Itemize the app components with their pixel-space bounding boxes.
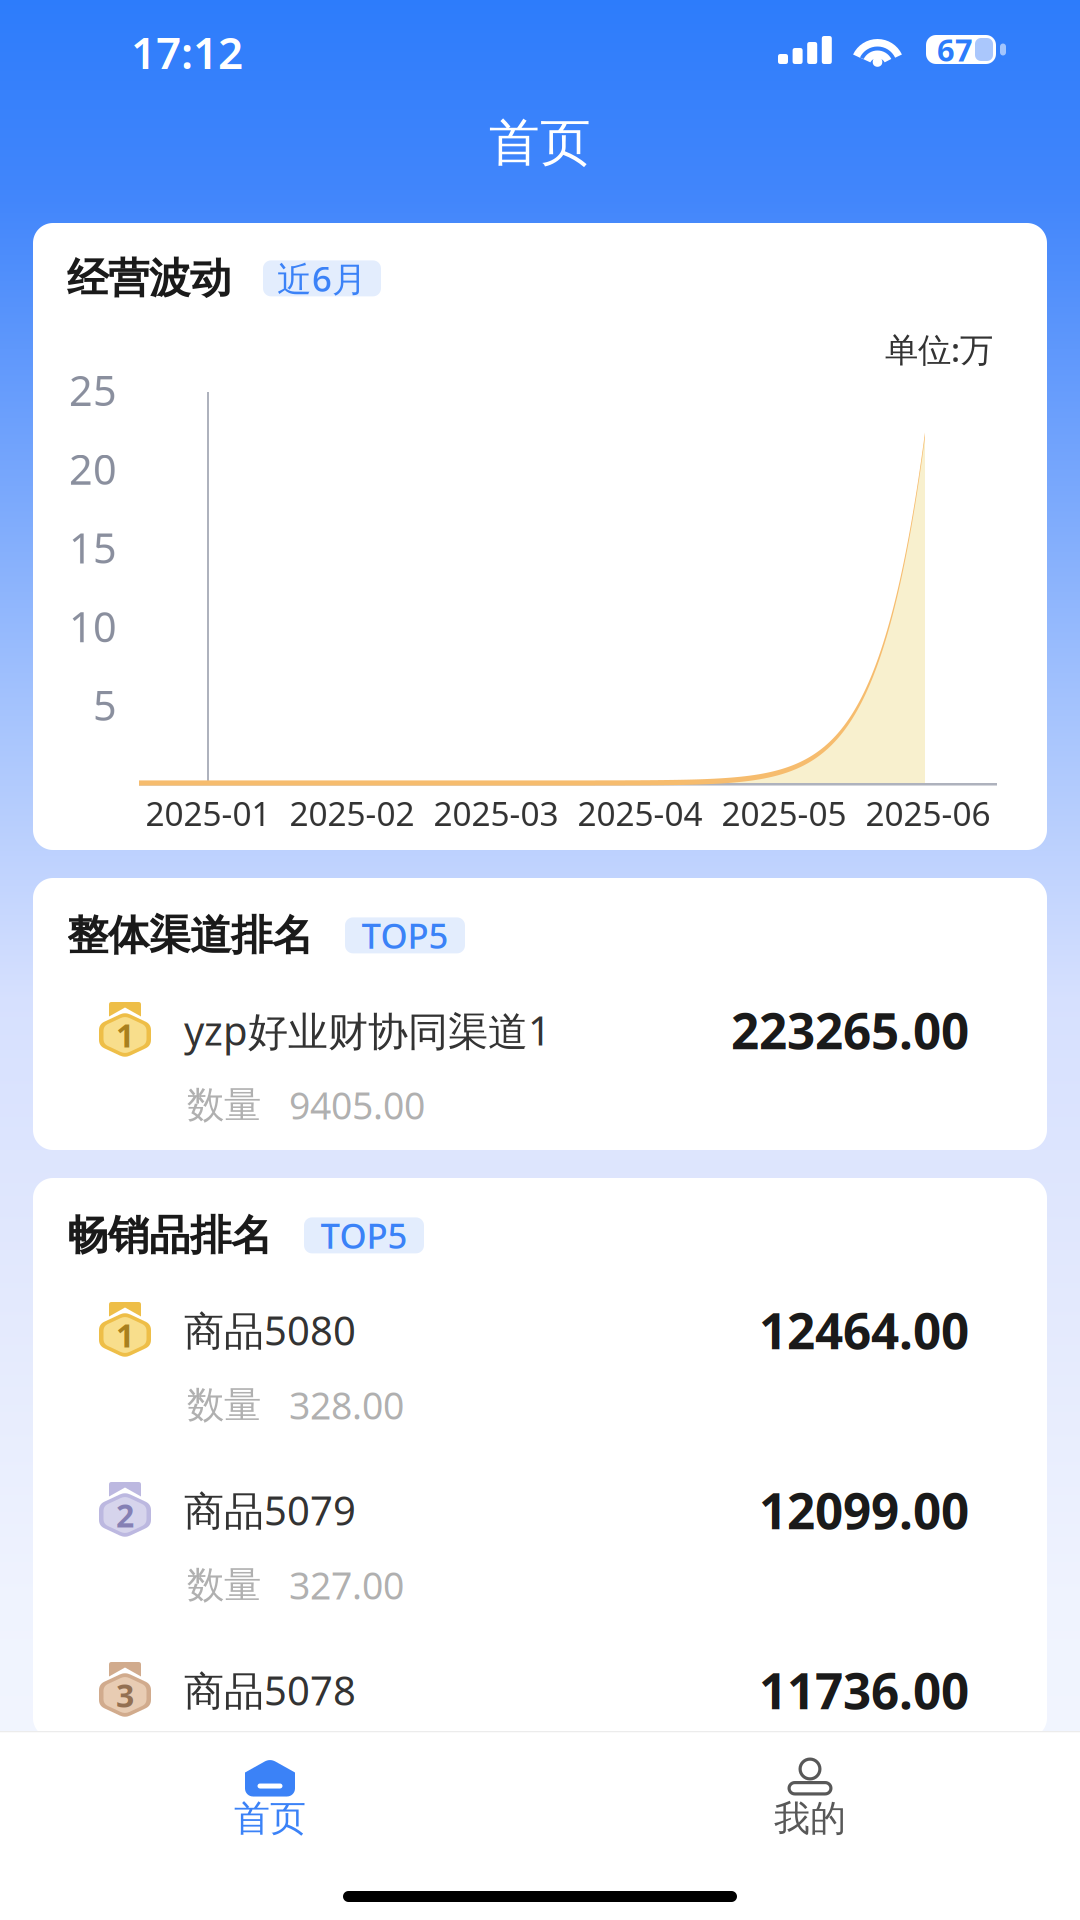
staticText: 首页 <box>234 1796 306 1841</box>
staticText: 2025-06 <box>865 791 990 835</box>
staticText: 15 <box>69 520 117 575</box>
staticText: 328.00 <box>289 1380 404 1430</box>
staticText: 2025-05 <box>721 791 846 835</box>
staticText: 近6月 <box>277 255 367 301</box>
staticText: 数量 <box>187 1562 261 1608</box>
staticText: 223265.00 <box>731 997 969 1063</box>
staticText: 12464.00 <box>759 1297 969 1363</box>
staticText: 我的 <box>774 1796 846 1841</box>
staticText: 12099.00 <box>759 1477 969 1543</box>
staticText: 326.00 <box>289 1740 404 1790</box>
staticText: TOP5 <box>361 912 448 958</box>
button[interactable]: 2 <box>99 1482 969 1608</box>
staticText: 2025-01 <box>145 791 270 835</box>
button[interactable]: 1 <box>99 1002 969 1128</box>
staticText: 2025-04 <box>577 791 702 835</box>
staticText: 10 <box>69 599 117 654</box>
button[interactable]: 3 <box>99 1662 969 1788</box>
staticText: 20 <box>69 441 117 496</box>
staticText: 畅销品排名 <box>67 1210 272 1261</box>
staticText: 经营波动 <box>67 253 231 304</box>
staticText: 1 <box>116 1014 134 1056</box>
staticText: 数量 <box>187 1742 261 1788</box>
button[interactable]: 首页 <box>0 1732 540 1872</box>
staticText: 3 <box>116 1674 134 1716</box>
staticText: 327.00 <box>289 1560 404 1610</box>
staticText: yzp好业财协同渠道1 <box>184 1003 551 1057</box>
staticText: 商品5078 <box>184 1663 356 1716</box>
button[interactable]: 1 <box>99 1302 969 1428</box>
staticText: 2025-03 <box>433 791 558 835</box>
staticText: 5 <box>93 677 117 732</box>
staticText: 9405.00 <box>289 1080 425 1130</box>
staticText: 11736.00 <box>759 1657 969 1723</box>
button[interactable]: 我的 <box>540 1732 1080 1872</box>
staticText: 商品5080 <box>184 1303 356 1356</box>
staticText: 数量 <box>187 1382 261 1428</box>
staticText: 首页 <box>489 112 591 174</box>
staticText: 2025-02 <box>289 791 414 835</box>
staticText: 1 <box>116 1314 134 1356</box>
staticText: 67 <box>937 29 973 70</box>
staticText: 商品5079 <box>184 1483 356 1536</box>
staticText: 17:12 <box>131 23 243 81</box>
staticText: 2 <box>116 1494 134 1536</box>
staticText: 数量 <box>187 1082 261 1128</box>
staticText: 25 <box>69 363 117 417</box>
staticText: 单位:万 <box>885 327 993 371</box>
staticText: 整体渠道排名 <box>67 910 313 961</box>
staticText: TOP5 <box>320 1212 407 1258</box>
